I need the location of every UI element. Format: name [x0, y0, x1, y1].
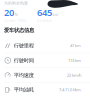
- staticText: 645: [37, 6, 52, 19]
- staticText: 47 km: [70, 43, 81, 48]
- staticText: 7.4-11.0 l/km: [59, 87, 81, 92]
- staticText: 总行驶里程: [37, 19, 52, 22]
- button[interactable]: 行驶时间: [0, 53, 90, 68]
- staticText: 爱车状态信息: [4, 27, 34, 34]
- button[interactable]: 平均油耗: [0, 83, 90, 97]
- staticText: 113 km: [68, 58, 81, 63]
- button[interactable]: 行驶里程: [0, 39, 90, 53]
- staticText: 20: [4, 6, 14, 19]
- staticText: %: [14, 12, 17, 17]
- staticText: 行驶时间: [14, 57, 34, 64]
- staticText: 平均油耗: [14, 86, 34, 93]
- button[interactable]: 平均速度: [0, 68, 90, 82]
- staticText: 行驶里程: [14, 42, 34, 49]
- staticText: 22 km/h: [67, 72, 81, 78]
- staticText: 平均速度: [14, 72, 34, 78]
- staticText: 当前剩余电量: [4, 1, 28, 6]
- staticText: 可行驶约 100km: [4, 19, 26, 22]
- staticText: km: [52, 12, 58, 17]
